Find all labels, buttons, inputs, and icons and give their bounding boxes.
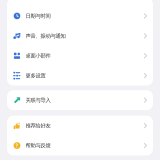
button[interactable]: 日期与时间 xyxy=(7,6,153,26)
button[interactable]: 更多设置 xyxy=(7,66,153,86)
staticText: 推荐给好友 xyxy=(25,122,50,129)
staticText: 声音、振动与通知 xyxy=(25,33,65,39)
button[interactable]: 桌面小部件 xyxy=(7,46,153,66)
button[interactable]: 推荐给好友 xyxy=(7,116,153,136)
button[interactable]: 声音、振动与通知 xyxy=(7,26,153,46)
staticText: ? xyxy=(15,142,18,149)
staticText: 关联与导入 xyxy=(25,97,50,103)
staticText: 日期与时间 xyxy=(25,13,50,19)
button[interactable]: ? xyxy=(7,136,153,155)
staticText: 桌面小部件 xyxy=(25,52,50,59)
button[interactable]: 关联与导入 xyxy=(7,90,153,110)
staticText: 更多设置 xyxy=(25,72,45,79)
staticText: 帮助与反馈 xyxy=(25,142,50,149)
